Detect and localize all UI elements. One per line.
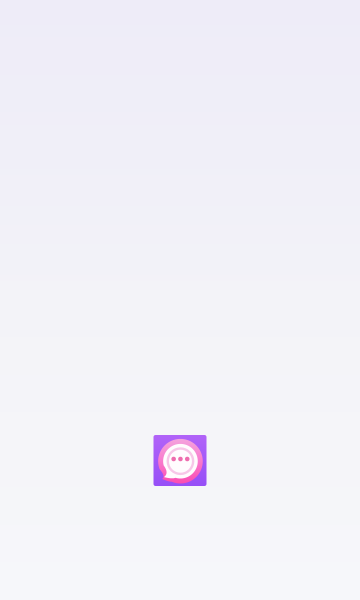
button[interactable]: App icon bbox=[153, 435, 206, 486]
